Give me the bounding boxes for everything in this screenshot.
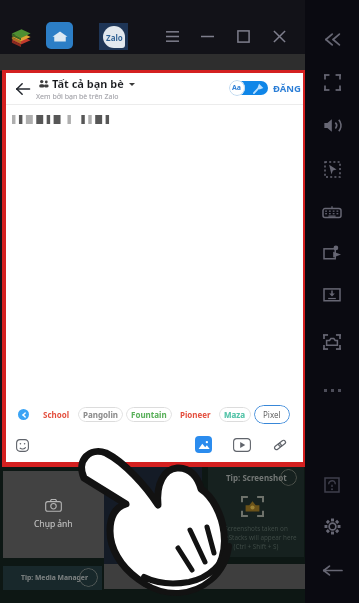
button[interactable]: Add photo [195, 436, 212, 453]
staticText: Xem bởi bạn bè trên Zalo [36, 92, 119, 102]
staticText: Fountain [131, 409, 167, 420]
staticText: Pioneer [180, 409, 211, 420]
button[interactable]: ĐĂNG [270, 79, 304, 98]
button[interactable]: Add video [232, 437, 251, 453]
button[interactable]: Maximize [230, 23, 256, 49]
button[interactable]: Pioneer [175, 407, 216, 422]
button[interactable]: Close tip [280, 469, 297, 486]
button[interactable]: Tất cả bạn bè [39, 76, 135, 102]
button[interactable]: Emoji [14, 437, 30, 453]
button[interactable]: Home [46, 22, 73, 49]
button[interactable]: Pixel [254, 405, 290, 424]
button[interactable]: Close [266, 23, 292, 49]
button[interactable]: More tools [322, 386, 342, 394]
staticText: Zalo [106, 32, 123, 43]
staticText: Aa [232, 83, 242, 93]
button[interactable]: Volume [305, 104, 359, 146]
button[interactable]: Settings [305, 505, 359, 547]
button[interactable]: Pangolin [78, 407, 123, 422]
button[interactable]: School [38, 407, 75, 422]
staticText: ĐĂNG [273, 82, 301, 95]
staticText: Chụp ảnh [34, 518, 73, 530]
button[interactable]: Pointer mapping [305, 148, 359, 190]
button[interactable]: Zalo [99, 23, 128, 50]
button[interactable]: Library [8, 22, 34, 48]
staticText: Tất cả bạn bè [52, 76, 124, 91]
button[interactable]: Previous fonts [18, 409, 29, 420]
staticText: Tip: Media Manager [21, 573, 88, 582]
button[interactable]: Help [305, 464, 359, 506]
button[interactable]: Close tip [79, 568, 98, 587]
button[interactable]: Toggle text style [230, 81, 268, 95]
button[interactable]: Fountain [126, 407, 172, 422]
button[interactable]: Install APK [305, 274, 359, 316]
staticText: Pangolin [83, 409, 118, 420]
button[interactable]: Back [305, 549, 359, 591]
button[interactable]: Back [10, 76, 36, 102]
button[interactable]: Screen record [305, 232, 359, 274]
button[interactable]: Fullscreen [305, 61, 359, 103]
button[interactable]: Keyboard [305, 191, 359, 233]
button[interactable]: Add link [271, 436, 288, 453]
button[interactable]: Collapse sidebar [305, 18, 359, 60]
button[interactable]: Menu [159, 23, 185, 49]
button[interactable]: Screenshot [305, 321, 359, 363]
staticText: Screenshots taken on BlueStacks will app… [211, 524, 301, 551]
staticText: Tip: Screenshot [226, 472, 287, 483]
staticText: Maza [224, 409, 246, 420]
button[interactable]: Minimize [194, 23, 220, 49]
button[interactable]: Chụp ảnh [3, 471, 104, 558]
button[interactable]: Maza [219, 407, 251, 422]
staticText: School [43, 409, 70, 420]
staticText: Pixel [263, 409, 281, 420]
